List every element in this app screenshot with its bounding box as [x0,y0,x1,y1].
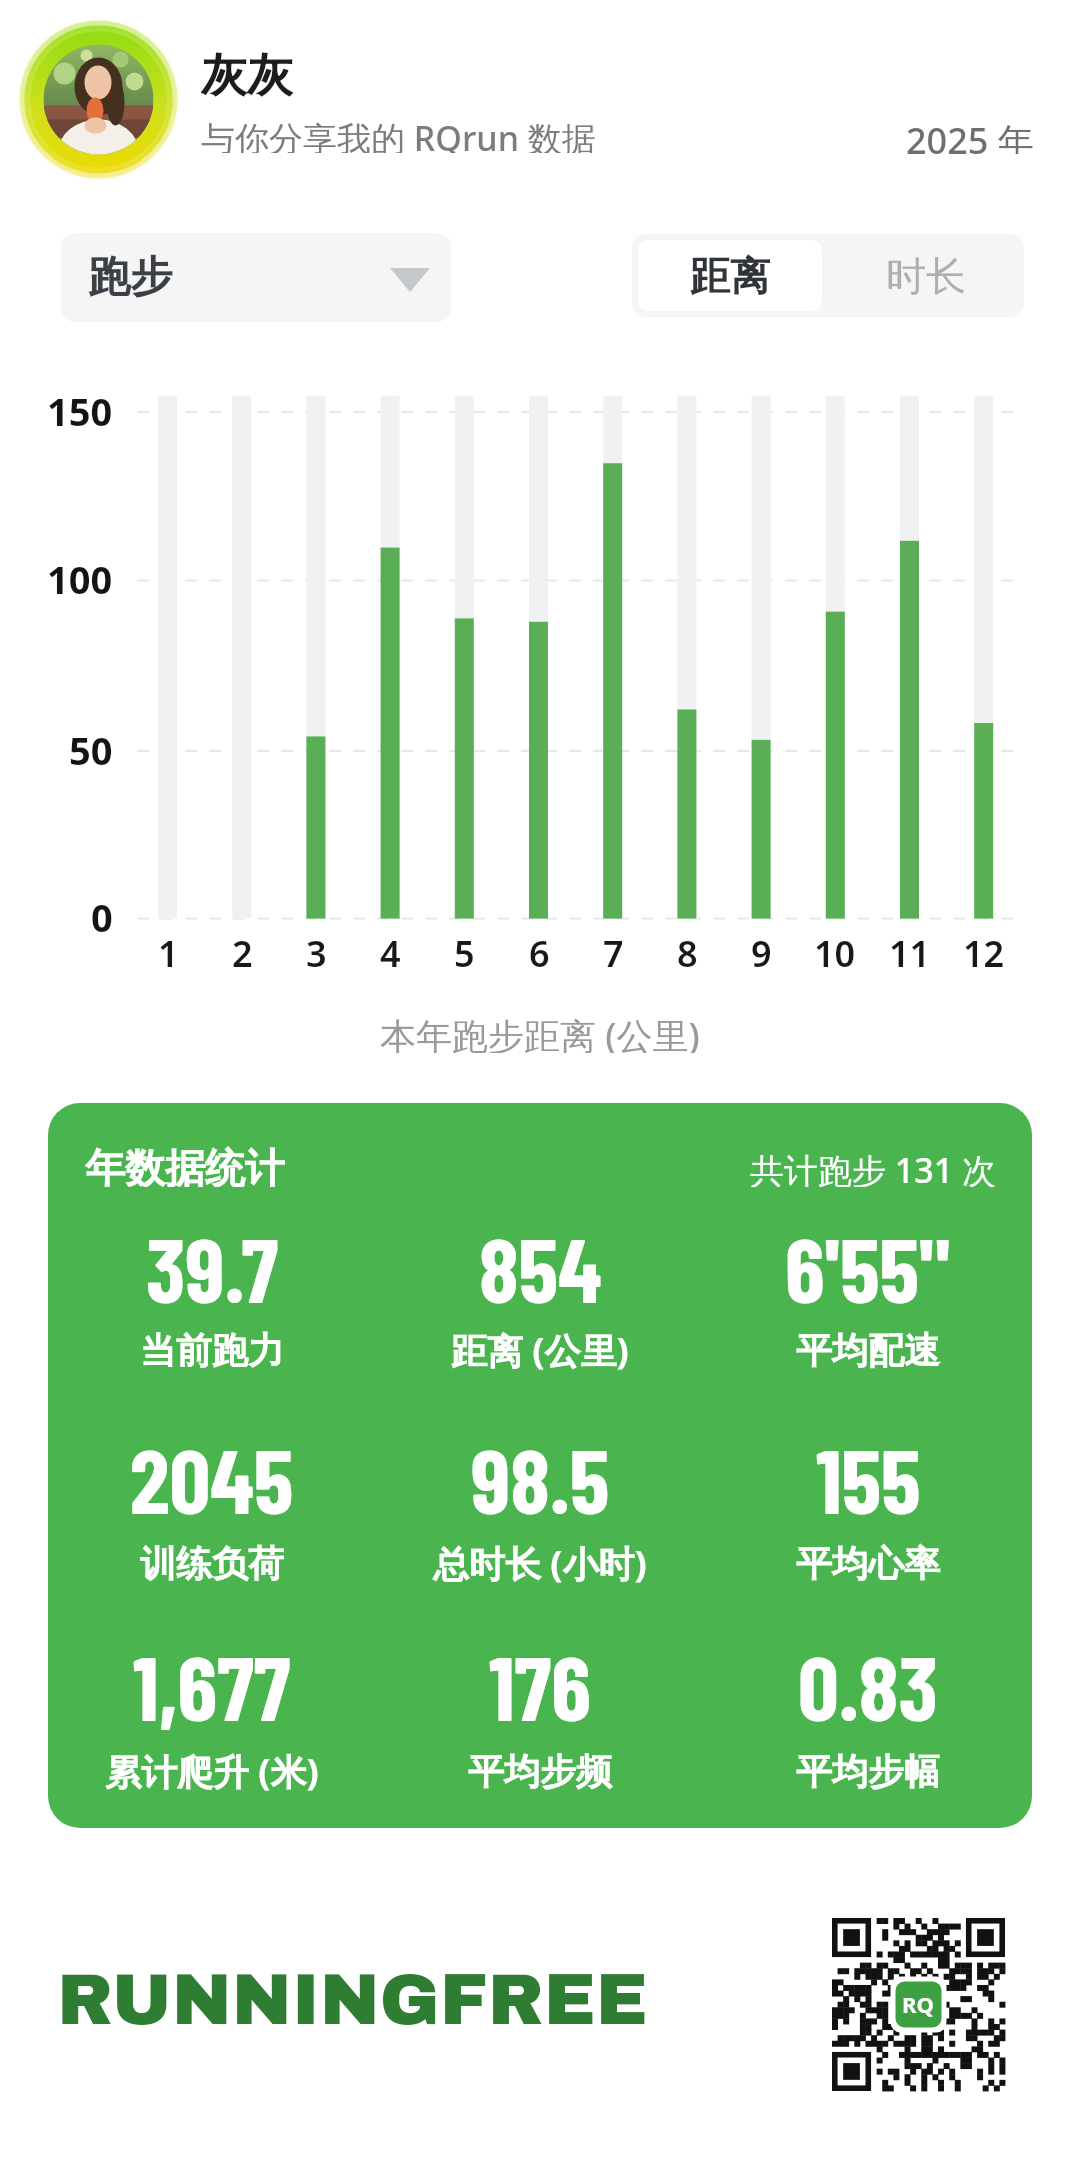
staticText: 6 [529,929,550,969]
button[interactable]: 时长 [828,234,1024,317]
staticText: 9 [751,929,772,969]
staticText: 本年跑步距离 (公里) [380,1011,700,1053]
staticText: 150 [47,385,113,429]
staticText: 4 [380,929,401,969]
staticText: 年数据统计 [85,1143,285,1187]
staticText: 2 [232,929,253,969]
staticText: RQ [902,1989,934,2019]
staticText: 距离 (公里) [451,1326,629,1375]
staticText: 854 [479,1213,602,1313]
staticText: 灰灰 [201,47,293,103]
staticText: 训练负荷 [140,1541,284,1586]
staticText: 98.5 [471,1424,610,1524]
staticText: 176 [489,1631,591,1731]
staticText: 5 [454,929,475,969]
staticText: 总时长 (小时) [433,1539,647,1588]
staticText: 8 [677,929,698,969]
staticText: 0.83 [798,1631,938,1731]
staticText: 39.7 [146,1213,279,1313]
staticText: 7 [603,929,624,969]
staticText: 当前跑力 [140,1328,284,1373]
staticText: 100 [47,553,113,597]
staticText: 0 [91,891,113,935]
staticText: 3 [306,929,327,969]
staticText: RUNNINGFREE [57,1961,648,2039]
staticText: 2025 年 [906,116,1034,154]
staticText: 2045 [130,1424,294,1524]
staticText: 155 [816,1424,921,1524]
staticText: 平均心率 [796,1541,940,1586]
staticText: 6'55" [785,1213,951,1313]
staticText: 距离 [690,251,770,301]
staticText: 平均配速 [796,1328,940,1373]
button[interactable]: 跑步 [61,233,451,322]
staticText: 50 [69,724,113,768]
staticText: 1 [158,929,179,969]
staticText: 累计爬升 (米) [105,1747,319,1796]
staticText: 10 [814,929,856,969]
button[interactable]: 距离 [638,240,822,311]
staticText: 跑步 [88,251,172,304]
staticText: 12 [963,929,1005,969]
staticText: 1,677 [133,1631,291,1731]
staticText: 时长 [886,251,966,301]
staticText: 平均步幅 [796,1749,940,1794]
staticText: 平均步频 [468,1749,612,1794]
staticText: 共计跑步 131 次 [750,1147,997,1187]
staticText: 11 [889,929,931,969]
staticText: 与你分享我的 RQrun 数据 [201,115,596,153]
